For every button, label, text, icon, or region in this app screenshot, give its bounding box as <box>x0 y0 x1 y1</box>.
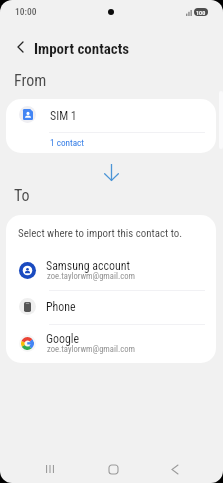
staticText: Phone <box>46 300 76 314</box>
staticText: zoe.taylorwm@gmail.com <box>47 344 135 354</box>
button[interactable] <box>6 99 216 153</box>
staticText: Select where to import this contact to. <box>18 227 183 240</box>
button[interactable] <box>6 326 216 361</box>
staticText: Import contacts <box>34 40 130 58</box>
staticText: zoe.taylorwm@gmail.com <box>47 271 135 281</box>
staticText: 1 contact <box>50 137 85 148</box>
staticText: To <box>14 186 30 205</box>
button[interactable]: Navigate up <box>9 36 31 58</box>
button[interactable] <box>6 253 216 288</box>
button[interactable]: Home <box>95 451 131 483</box>
staticText: 10:00 <box>15 6 37 17</box>
staticText: Samsung account <box>46 259 131 273</box>
button[interactable] <box>6 290 216 325</box>
staticText: 100 <box>196 9 206 16</box>
staticText: Google <box>46 332 80 346</box>
button[interactable]: Back <box>157 451 193 483</box>
staticText: SIM 1 <box>50 109 77 123</box>
staticText: From <box>14 71 47 90</box>
button[interactable]: Recent apps <box>32 451 68 483</box>
